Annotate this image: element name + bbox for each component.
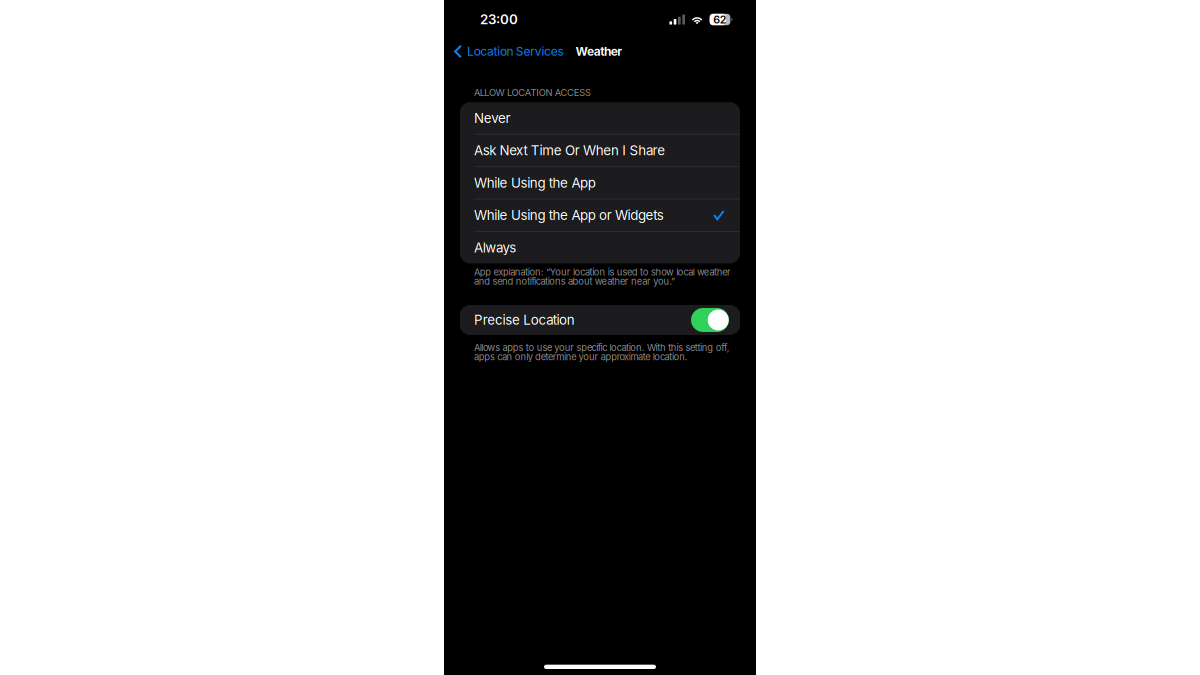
staticText: Weather	[575, 44, 622, 59]
button[interactable]: While Using the App or Widgets	[460, 199, 740, 231]
button[interactable]: Never	[460, 102, 740, 134]
staticText: Always	[474, 240, 516, 256]
staticText: ALLOW LOCATION ACCESS	[474, 87, 591, 98]
staticText: App explanation: “Your location is used …	[474, 266, 731, 287]
staticText: 62	[713, 13, 727, 26]
staticText: Allows apps to use your specific locatio…	[474, 342, 730, 363]
staticText: Ask Next Time Or When I Share	[474, 142, 665, 158]
staticText: Never	[474, 110, 511, 126]
staticText: While Using the App or Widgets	[474, 207, 664, 223]
button[interactable]: Ask Next Time Or When I Share	[460, 135, 740, 166]
staticText: 23:00	[480, 11, 518, 27]
button[interactable]: Precise Location	[460, 305, 740, 335]
button[interactable]: Location Services	[454, 37, 563, 65]
staticText: Location Services	[467, 44, 563, 59]
staticText: While Using the App	[474, 175, 596, 191]
button[interactable]: Always	[460, 232, 740, 263]
staticText: Precise Location	[474, 312, 575, 328]
button[interactable]: While Using the App	[460, 167, 740, 199]
